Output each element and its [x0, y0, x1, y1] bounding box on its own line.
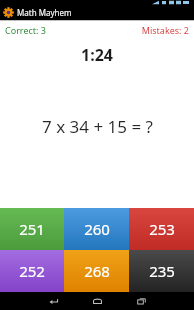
- staticText: 251: [19, 219, 45, 239]
- staticText: Correct: 3: [5, 24, 46, 36]
- staticText: 1:24: [81, 44, 113, 66]
- staticText: 268: [84, 261, 110, 281]
- button[interactable]: 252: [0, 250, 64, 292]
- staticText: 253: [149, 219, 175, 239]
- button[interactable]: Recent apps: [119, 292, 163, 310]
- button[interactable]: 260: [64, 208, 129, 250]
- staticText: 235: [149, 261, 175, 281]
- staticText: Mistakes: 2: [141, 24, 189, 36]
- button[interactable]: Home: [75, 292, 119, 310]
- button[interactable]: 235: [129, 250, 194, 292]
- other: App icon: [3, 7, 14, 18]
- staticText: 7 x 34 + 15 = ?: [42, 115, 153, 138]
- staticText: 260: [84, 219, 110, 239]
- staticText: Math Mayhem: [17, 7, 72, 18]
- button[interactable]: 268: [64, 250, 129, 292]
- button[interactable]: Back: [31, 292, 75, 310]
- button[interactable]: App icon: [0, 5, 194, 20]
- button[interactable]: 251: [0, 208, 64, 250]
- staticText: 252: [19, 261, 45, 281]
- button[interactable]: 253: [129, 208, 194, 250]
